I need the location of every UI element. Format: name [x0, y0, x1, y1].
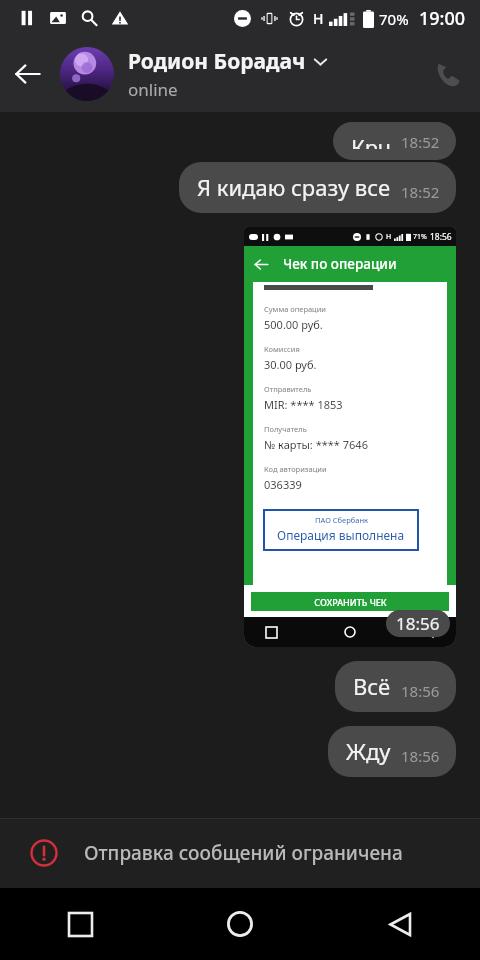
staticText: Всё [353, 671, 391, 701]
staticText: 18:56 [401, 746, 440, 766]
staticText: Отправитель [264, 384, 312, 394]
button[interactable]: Payment receipt screenshot [244, 227, 456, 647]
button[interactable]: Отправка сообщений ограничена [30, 818, 480, 888]
staticText: 18:52 [401, 132, 440, 149]
staticText: Операция выполнена [277, 527, 405, 543]
button[interactable]: СОХРАНИТЬ ЧЕК [251, 592, 449, 611]
button[interactable]: Я кидаю сразу все [179, 162, 456, 213]
staticText: Получатель [264, 424, 307, 434]
button[interactable]: Profile photo [60, 47, 114, 101]
staticText: Жду [346, 736, 391, 766]
staticText: Код авторизации [264, 464, 327, 474]
staticText: 500.00 руб. [264, 317, 323, 332]
staticText: 18:56 [430, 231, 452, 243]
staticText: H [313, 9, 324, 28]
staticText: 18:52 [401, 182, 440, 202]
staticText: H [386, 232, 392, 242]
button[interactable]: Жду [328, 726, 456, 777]
staticText: СОХРАНИТЬ ЧЕК [314, 596, 387, 608]
staticText: № карты: **** 7646 [264, 437, 368, 452]
staticText: Отправка сообщений ограничена [84, 840, 403, 866]
button[interactable]: Back [0, 46, 56, 102]
staticText: 70% [379, 9, 409, 29]
button[interactable]: Recent apps [0, 888, 160, 960]
staticText: Я кидаю сразу все [197, 172, 391, 202]
staticText: ПАО Сбербанк [315, 515, 368, 525]
button[interactable]: Крч [333, 122, 456, 160]
staticText: 19:00 [419, 6, 466, 31]
button[interactable]: Родион Борадач [128, 36, 416, 112]
staticText: Сумма операции [264, 304, 327, 314]
staticText: online [128, 78, 178, 101]
button[interactable]: Back [320, 888, 480, 960]
staticText: Комиссия [264, 344, 300, 354]
staticText: 71% [413, 232, 427, 242]
staticText: Родион Борадач [128, 47, 306, 76]
staticText: 18:56 [396, 612, 440, 635]
staticText: 036339 [264, 477, 302, 492]
button[interactable]: Home [160, 888, 320, 960]
staticText: 18:56 [401, 681, 440, 701]
staticText: Крч [351, 132, 391, 149]
staticText: Чек по операции [283, 255, 397, 273]
button[interactable]: Call [416, 42, 480, 106]
button[interactable]: Всё [335, 661, 456, 712]
staticText: 30.00 руб. [264, 357, 317, 372]
staticText: MIR: **** 1853 [264, 397, 343, 412]
